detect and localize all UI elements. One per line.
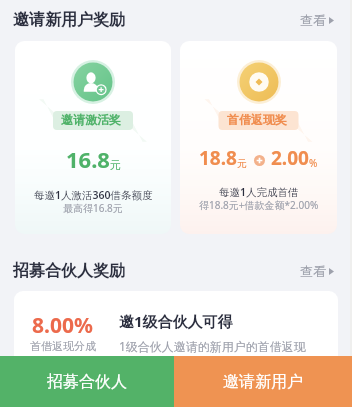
staticText: 18.8 xyxy=(199,145,237,171)
staticText: 每邀1人完成首借 xyxy=(219,185,299,199)
staticText: 元 xyxy=(110,158,121,172)
button[interactable]: 查看 xyxy=(300,259,334,283)
staticText: 16.8 xyxy=(66,144,110,174)
staticText: 查看 xyxy=(300,12,326,28)
staticText: 首借返现奖 xyxy=(227,112,287,127)
staticText: 邀1级合伙人可得 xyxy=(119,311,233,331)
staticText: 查看 xyxy=(300,263,326,279)
staticText: % xyxy=(309,156,318,170)
staticText: 邀请激活奖 xyxy=(61,112,121,127)
staticText: 1级合伙人邀请的新用户的首借返现 xyxy=(119,338,306,354)
staticText: 每邀1人激活360借条额度 xyxy=(34,188,153,202)
button[interactable]: 邀请新用户 xyxy=(174,356,352,407)
staticText: 邀请新用户奖励 xyxy=(13,10,125,30)
staticText: 邀请新用户 xyxy=(223,372,303,392)
button[interactable]: 首借返现奖 xyxy=(180,41,337,234)
button[interactable]: 邀请激活奖 xyxy=(15,41,171,234)
staticText: 最高得16.8元 xyxy=(63,201,123,215)
staticText: 元 xyxy=(237,157,247,170)
staticText: 招募合伙人 xyxy=(47,372,127,392)
staticText: 招募合伙人奖励 xyxy=(13,261,125,281)
staticText: 得18.8元+借款金额*2.00% xyxy=(199,198,319,212)
button[interactable]: 查看 xyxy=(300,8,334,32)
button[interactable]: 8.00% xyxy=(14,291,338,381)
staticText: 8.00% xyxy=(32,311,93,340)
staticText: 首借返现分成 xyxy=(30,339,96,353)
button[interactable]: 招募合伙人 xyxy=(0,356,174,407)
staticText: 2.00 xyxy=(271,145,309,171)
